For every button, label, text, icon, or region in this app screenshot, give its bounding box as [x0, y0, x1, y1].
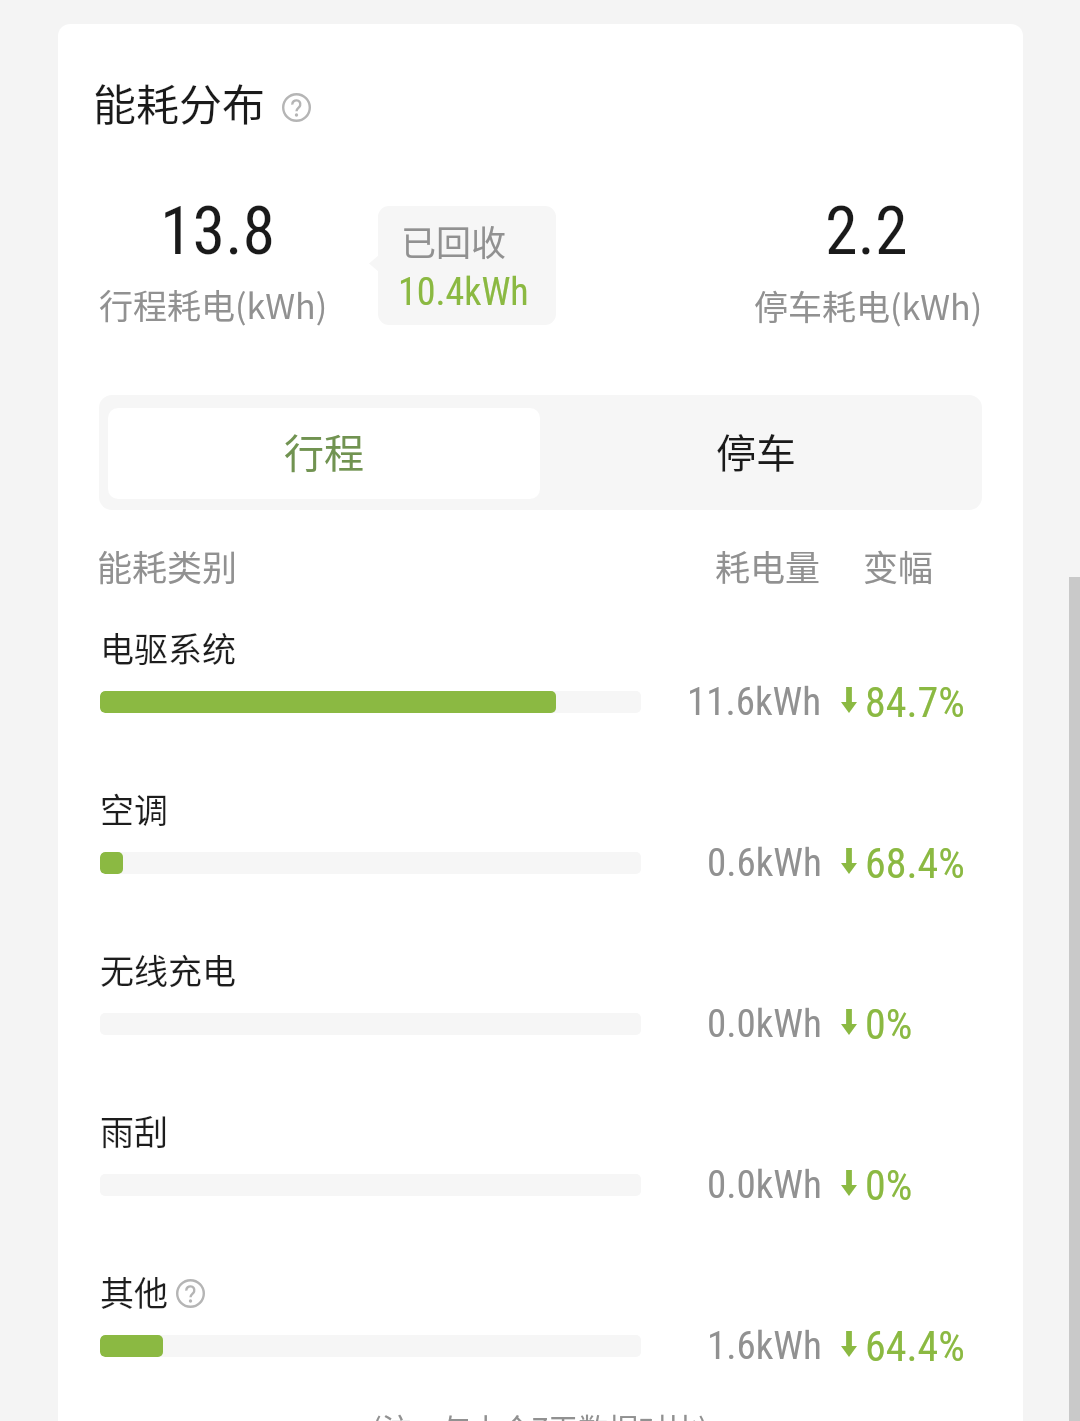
staticText: 2.2 — [825, 193, 908, 270]
button[interactable] — [58, 933, 1023, 1053]
button[interactable]: 其他能耗说明 — [176, 1279, 205, 1308]
staticText: 能耗分布 — [93, 71, 265, 133]
staticText: 电驱系统 — [100, 623, 236, 672]
button[interactable]: 停车 — [540, 408, 972, 499]
staticText: 0% — [865, 1000, 913, 1049]
button[interactable] — [58, 1255, 1023, 1375]
staticText: 能耗类别 — [97, 540, 238, 591]
button[interactable] — [58, 1094, 1023, 1214]
staticText: 行程 — [284, 422, 364, 480]
staticText: 行程耗电(kWh) — [99, 280, 328, 329]
staticText: 10.4kWh — [398, 270, 529, 315]
button[interactable] — [58, 772, 1023, 892]
staticText: 84.7% — [865, 678, 965, 727]
staticText: 68.4% — [865, 839, 965, 888]
staticText: 雨刮 — [100, 1106, 168, 1155]
staticText: (注：与上个7天数据对比) — [0, 1405, 1080, 1421]
staticText: 停车 — [716, 422, 796, 480]
staticText: 其他 — [100, 1267, 168, 1316]
button[interactable] — [58, 611, 1023, 731]
staticText: 13.8 — [160, 193, 276, 270]
staticText: 64.4% — [865, 1322, 965, 1371]
staticText: 0.0kWh — [707, 1001, 822, 1047]
button[interactable]: 行程 — [108, 408, 540, 499]
staticText: 11.6kWh — [687, 679, 822, 725]
staticText: 变幅 — [863, 540, 934, 591]
staticText: 1.6kWh — [707, 1323, 822, 1369]
staticText: 停车耗电(kWh) — [754, 281, 983, 330]
button[interactable]: 能耗分布说明 — [282, 93, 311, 122]
staticText: 0.6kWh — [707, 840, 822, 886]
staticText: 空调 — [100, 784, 168, 833]
staticText: 0% — [865, 1161, 913, 1210]
staticText: 已回收 — [401, 215, 507, 266]
staticText: 耗电量 — [715, 540, 821, 591]
staticText: 0.0kWh — [707, 1162, 822, 1208]
staticText: 无线充电 — [100, 945, 236, 994]
